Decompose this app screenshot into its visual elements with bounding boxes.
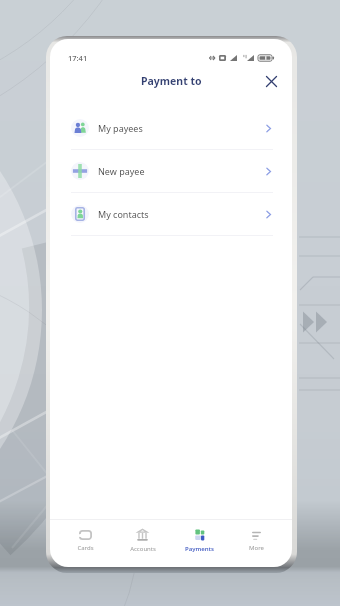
staticText: Accounts (130, 545, 156, 553)
button[interactable]: Accounts (114, 529, 171, 553)
staticText: 17:41 (68, 53, 88, 63)
button[interactable]: Cards (57, 530, 114, 552)
staticText: Cards (77, 544, 94, 552)
button[interactable]: New payee (50, 150, 292, 192)
staticText: Payments (185, 545, 214, 553)
button[interactable]: My contacts (50, 193, 292, 235)
staticText: New payee (98, 165, 145, 177)
button[interactable]: Close (261, 71, 281, 91)
staticText: My payees (98, 122, 143, 134)
staticText: My contacts (98, 208, 149, 220)
button[interactable]: My payees (50, 107, 292, 149)
button[interactable]: More (228, 530, 285, 552)
staticText: Payment to (141, 74, 202, 88)
button[interactable]: Payments (171, 529, 228, 553)
staticText: More (249, 544, 264, 552)
